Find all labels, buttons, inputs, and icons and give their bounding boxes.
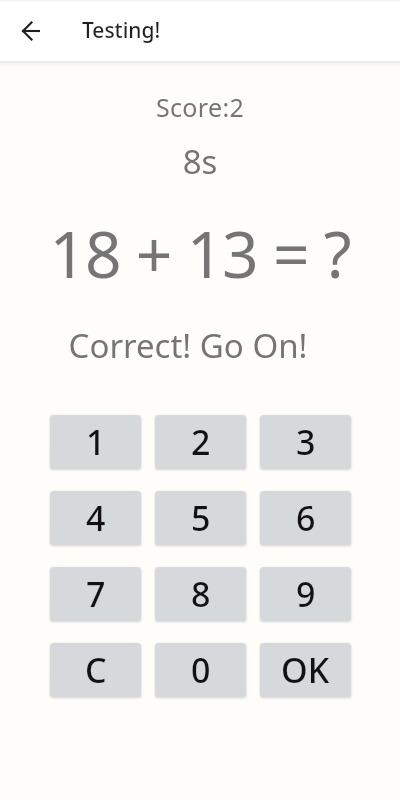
staticText: 6 — [296, 495, 316, 541]
button[interactable]: Back — [11, 11, 51, 51]
staticText: Correct! Go On! — [0, 323, 376, 368]
button[interactable]: 6 — [260, 491, 351, 545]
button[interactable]: 8 — [155, 567, 246, 621]
button[interactable]: C — [50, 643, 141, 697]
button[interactable]: 4 — [50, 491, 141, 545]
button[interactable]: 2 — [155, 415, 246, 469]
staticText: OK — [281, 647, 330, 693]
button[interactable]: 3 — [260, 415, 351, 469]
staticText: 7 — [86, 571, 106, 617]
staticText: 8 — [191, 571, 211, 617]
button[interactable]: 7 — [50, 567, 141, 621]
button[interactable]: 9 — [260, 567, 351, 621]
button[interactable]: OK — [260, 643, 351, 697]
staticText: Score:2 — [0, 90, 400, 124]
staticText: 4 — [86, 495, 106, 541]
staticText: C — [85, 647, 107, 693]
staticText: 2 — [191, 419, 211, 465]
staticText: 8s — [0, 139, 400, 184]
button[interactable]: 0 — [155, 643, 246, 697]
staticText: 0 — [191, 647, 211, 693]
staticText: 18 + 13 = ? — [0, 210, 400, 297]
staticText: 5 — [191, 495, 211, 541]
button[interactable]: 5 — [155, 491, 246, 545]
staticText: 3 — [296, 419, 316, 465]
staticText: 9 — [296, 571, 316, 617]
staticText: Testing! — [82, 16, 161, 45]
button[interactable]: 1 — [50, 415, 141, 469]
staticText: 1 — [86, 419, 106, 465]
